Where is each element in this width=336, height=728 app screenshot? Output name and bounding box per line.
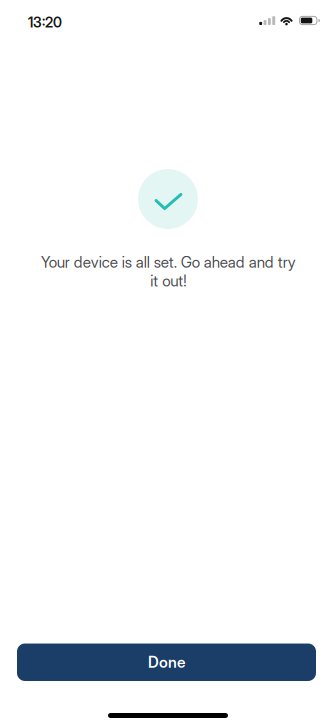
button[interactable]: Done (17, 643, 316, 681)
staticText: Your device is all set. Go ahead and try… (40, 253, 295, 290)
staticText: 13:20 (28, 14, 62, 31)
staticText: Done (148, 653, 185, 672)
